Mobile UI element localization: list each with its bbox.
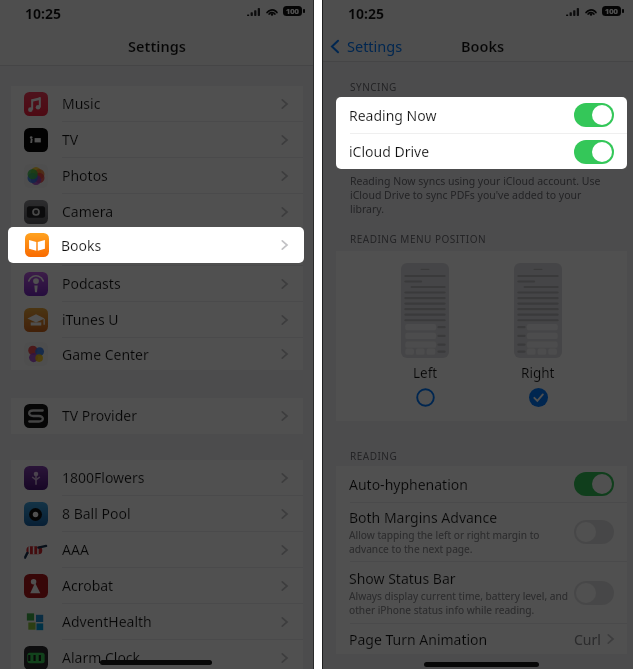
button[interactable]: Auto-hyphenation	[336, 466, 627, 502]
button[interactable]: iCloud Drive	[336, 134, 627, 169]
button[interactable]: Acrobat	[11, 568, 303, 603]
button[interactable]: Switch off	[574, 581, 614, 605]
button[interactable]: Left	[395, 263, 455, 407]
staticText: iCloud Drive	[349, 142, 430, 161]
staticText: Game Center	[62, 345, 149, 364]
button[interactable]: Alarm Clock	[11, 640, 303, 669]
staticText: SYNCING	[350, 80, 397, 94]
button[interactable]: Show Status Bar	[336, 562, 627, 623]
staticText: Books	[461, 36, 505, 56]
button[interactable]: Reading Now	[336, 97, 627, 133]
staticText: Photos	[62, 166, 108, 185]
staticText: Settings	[0, 36, 314, 56]
staticText: Show Status Bar	[349, 569, 456, 588]
button[interactable]: Both Margins Advance	[336, 503, 627, 561]
staticText: Reading Now	[349, 106, 437, 125]
button[interactable]: Books	[11, 230, 303, 265]
staticText: Left	[413, 364, 438, 382]
staticText: Reading Now syncs using your iCloud acco…	[350, 174, 601, 216]
staticText: TV	[62, 130, 79, 149]
button[interactable]: Settings	[331, 35, 403, 57]
staticText: Allow tapping the left or right margin t…	[349, 528, 540, 556]
staticText: Music	[62, 94, 101, 113]
staticText: Podcasts	[62, 274, 121, 293]
button[interactable]: 1800Flowers	[11, 460, 303, 495]
staticText: Books	[61, 236, 102, 255]
button[interactable]: TV Provider	[11, 398, 303, 433]
staticText: Curl	[574, 630, 601, 649]
button[interactable]: 8 Ball Pool	[11, 496, 303, 531]
button[interactable]: Podcasts	[11, 266, 303, 301]
staticText: 10:25	[25, 4, 61, 23]
staticText: AAA	[62, 540, 89, 559]
staticText: READING MENU POSITION	[350, 232, 487, 246]
button[interactable]: AAA	[11, 532, 303, 567]
staticText: Auto-hyphenation	[349, 475, 468, 494]
button[interactable]: Page Turn Animation	[336, 624, 627, 654]
staticText: Right	[521, 364, 555, 382]
button[interactable]: Game Center	[11, 338, 303, 370]
button[interactable]: Books	[8, 227, 304, 263]
staticText: Both Margins Advance	[349, 508, 498, 527]
staticText: Page Turn Animation	[349, 630, 488, 649]
staticText: TV Provider	[62, 406, 137, 425]
staticText: 1800Flowers	[62, 468, 145, 487]
staticText: 100	[605, 6, 618, 16]
button[interactable]: Right	[508, 263, 568, 407]
staticText: Alarm Clock	[62, 648, 141, 667]
button[interactable]: Switch on	[574, 140, 614, 164]
staticText: iTunes U	[62, 310, 119, 329]
staticText: Always display current time, battery lev…	[349, 589, 569, 617]
staticText: 8 Ball Pool	[62, 504, 131, 523]
staticText: 10:25	[348, 4, 384, 23]
button[interactable]: Switch off	[574, 520, 614, 544]
button[interactable]: Music	[11, 86, 303, 121]
staticText: READING	[350, 449, 398, 463]
staticText: 100	[286, 6, 299, 16]
button[interactable]: TV	[11, 122, 303, 157]
button[interactable]: Photos	[11, 158, 303, 193]
button[interactable]: Switch on	[574, 472, 614, 496]
staticText: Camera	[62, 202, 114, 221]
button[interactable]: Switch on	[574, 103, 614, 127]
staticText: Acrobat	[62, 576, 114, 595]
button[interactable]: iTunes U	[11, 302, 303, 337]
staticText: Settings	[347, 36, 403, 56]
staticText: AdventHealth	[62, 612, 152, 631]
button[interactable]: AdventHealth	[11, 604, 303, 639]
button[interactable]: Camera	[11, 194, 303, 229]
staticText: Books	[62, 238, 103, 257]
